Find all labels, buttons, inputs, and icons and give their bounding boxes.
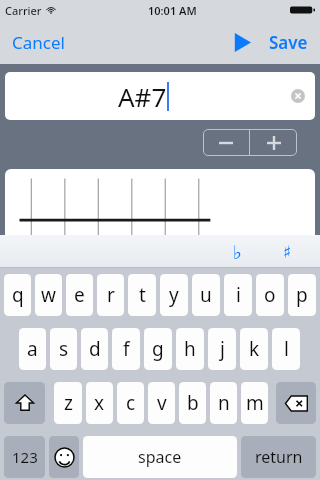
button[interactable]: Sharp — [270, 235, 304, 268]
staticText: ♭ — [233, 241, 242, 263]
staticText: x — [94, 390, 105, 416]
button[interactable]: f — [112, 328, 140, 370]
staticText: ♯ — [283, 242, 292, 262]
staticText: y — [169, 282, 179, 308]
staticText: return — [255, 446, 303, 468]
staticText: z — [64, 390, 73, 416]
staticText: n — [218, 390, 230, 416]
button[interactable]: h — [176, 328, 204, 370]
staticText: v — [157, 390, 167, 416]
button[interactable]: return — [241, 436, 316, 478]
button[interactable]: q — [4, 274, 31, 316]
staticText: d — [89, 336, 101, 362]
button[interactable]: e — [66, 274, 93, 316]
button[interactable]: s — [50, 328, 77, 370]
staticText: Cancel — [12, 31, 65, 54]
staticText: k — [249, 336, 260, 362]
staticText: g — [152, 336, 164, 362]
staticText: r — [107, 282, 115, 308]
staticText: o — [264, 282, 276, 308]
button[interactable]: o — [256, 274, 284, 316]
button[interactable]: k — [240, 328, 268, 370]
button[interactable]: z — [54, 382, 82, 424]
staticText: i — [236, 282, 241, 308]
button[interactable]: i — [224, 274, 252, 316]
button[interactable]: d — [81, 328, 108, 370]
button[interactable]: Increase — [250, 129, 297, 156]
button[interactable]: Decrease — [203, 129, 249, 156]
staticText: q — [12, 282, 24, 308]
staticText: f — [123, 336, 130, 362]
button[interactable]: Clear text — [281, 79, 315, 113]
button[interactable]: v — [148, 382, 175, 424]
button[interactable]: a — [19, 328, 46, 370]
button[interactable]: w — [35, 274, 62, 316]
button[interactable]: u — [192, 274, 220, 316]
button[interactable]: Shift — [4, 382, 45, 424]
button[interactable]: 123 — [4, 436, 45, 478]
button[interactable]: p — [288, 274, 316, 316]
staticText: m — [246, 390, 264, 416]
staticText: A#7 — [118, 79, 167, 114]
button[interactable]: Emoji — [49, 436, 79, 478]
button[interactable]: l — [272, 328, 300, 370]
staticText: b — [187, 390, 199, 416]
staticText: Carrier — [5, 3, 42, 18]
button[interactable]: Backspace — [276, 382, 316, 424]
staticText: 10:01 AM — [148, 3, 197, 18]
button[interactable]: r — [97, 274, 124, 316]
button[interactable]: space — [83, 436, 237, 478]
staticText: w — [41, 282, 56, 308]
button[interactable]: m — [241, 382, 268, 424]
button[interactable]: n — [210, 382, 237, 424]
staticText: t — [139, 282, 146, 308]
button[interactable]: j — [208, 328, 236, 370]
staticText: h — [184, 336, 196, 362]
button[interactable]: y — [160, 274, 188, 316]
button[interactable] — [5, 169, 315, 235]
button[interactable]: Cancel — [9, 23, 68, 62]
button[interactable]: A#7 — [5, 72, 315, 120]
button[interactable]: Flat — [220, 235, 254, 268]
staticText: Save — [269, 31, 308, 54]
button[interactable]: g — [144, 328, 172, 370]
staticText: u — [200, 282, 212, 308]
staticText: 123 — [12, 447, 38, 467]
staticText: c — [126, 390, 136, 416]
button[interactable]: b — [179, 382, 206, 424]
staticText: space — [138, 446, 182, 468]
staticText: j — [220, 336, 225, 362]
button[interactable]: c — [117, 382, 144, 424]
button[interactable]: Save — [266, 23, 311, 62]
staticText: p — [296, 282, 308, 308]
button[interactable]: x — [86, 382, 113, 424]
button[interactable]: t — [128, 274, 156, 316]
button[interactable]: Play — [227, 26, 257, 59]
staticText: s — [59, 336, 69, 362]
staticText: e — [74, 282, 85, 308]
staticText: a — [27, 336, 38, 362]
staticText: l — [284, 336, 289, 362]
